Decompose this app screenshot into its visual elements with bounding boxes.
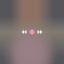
- button[interactable]: Previous track: [20, 27, 28, 37]
- button[interactable]: Play: [28, 27, 36, 37]
- button[interactable]: Next track: [36, 27, 44, 37]
